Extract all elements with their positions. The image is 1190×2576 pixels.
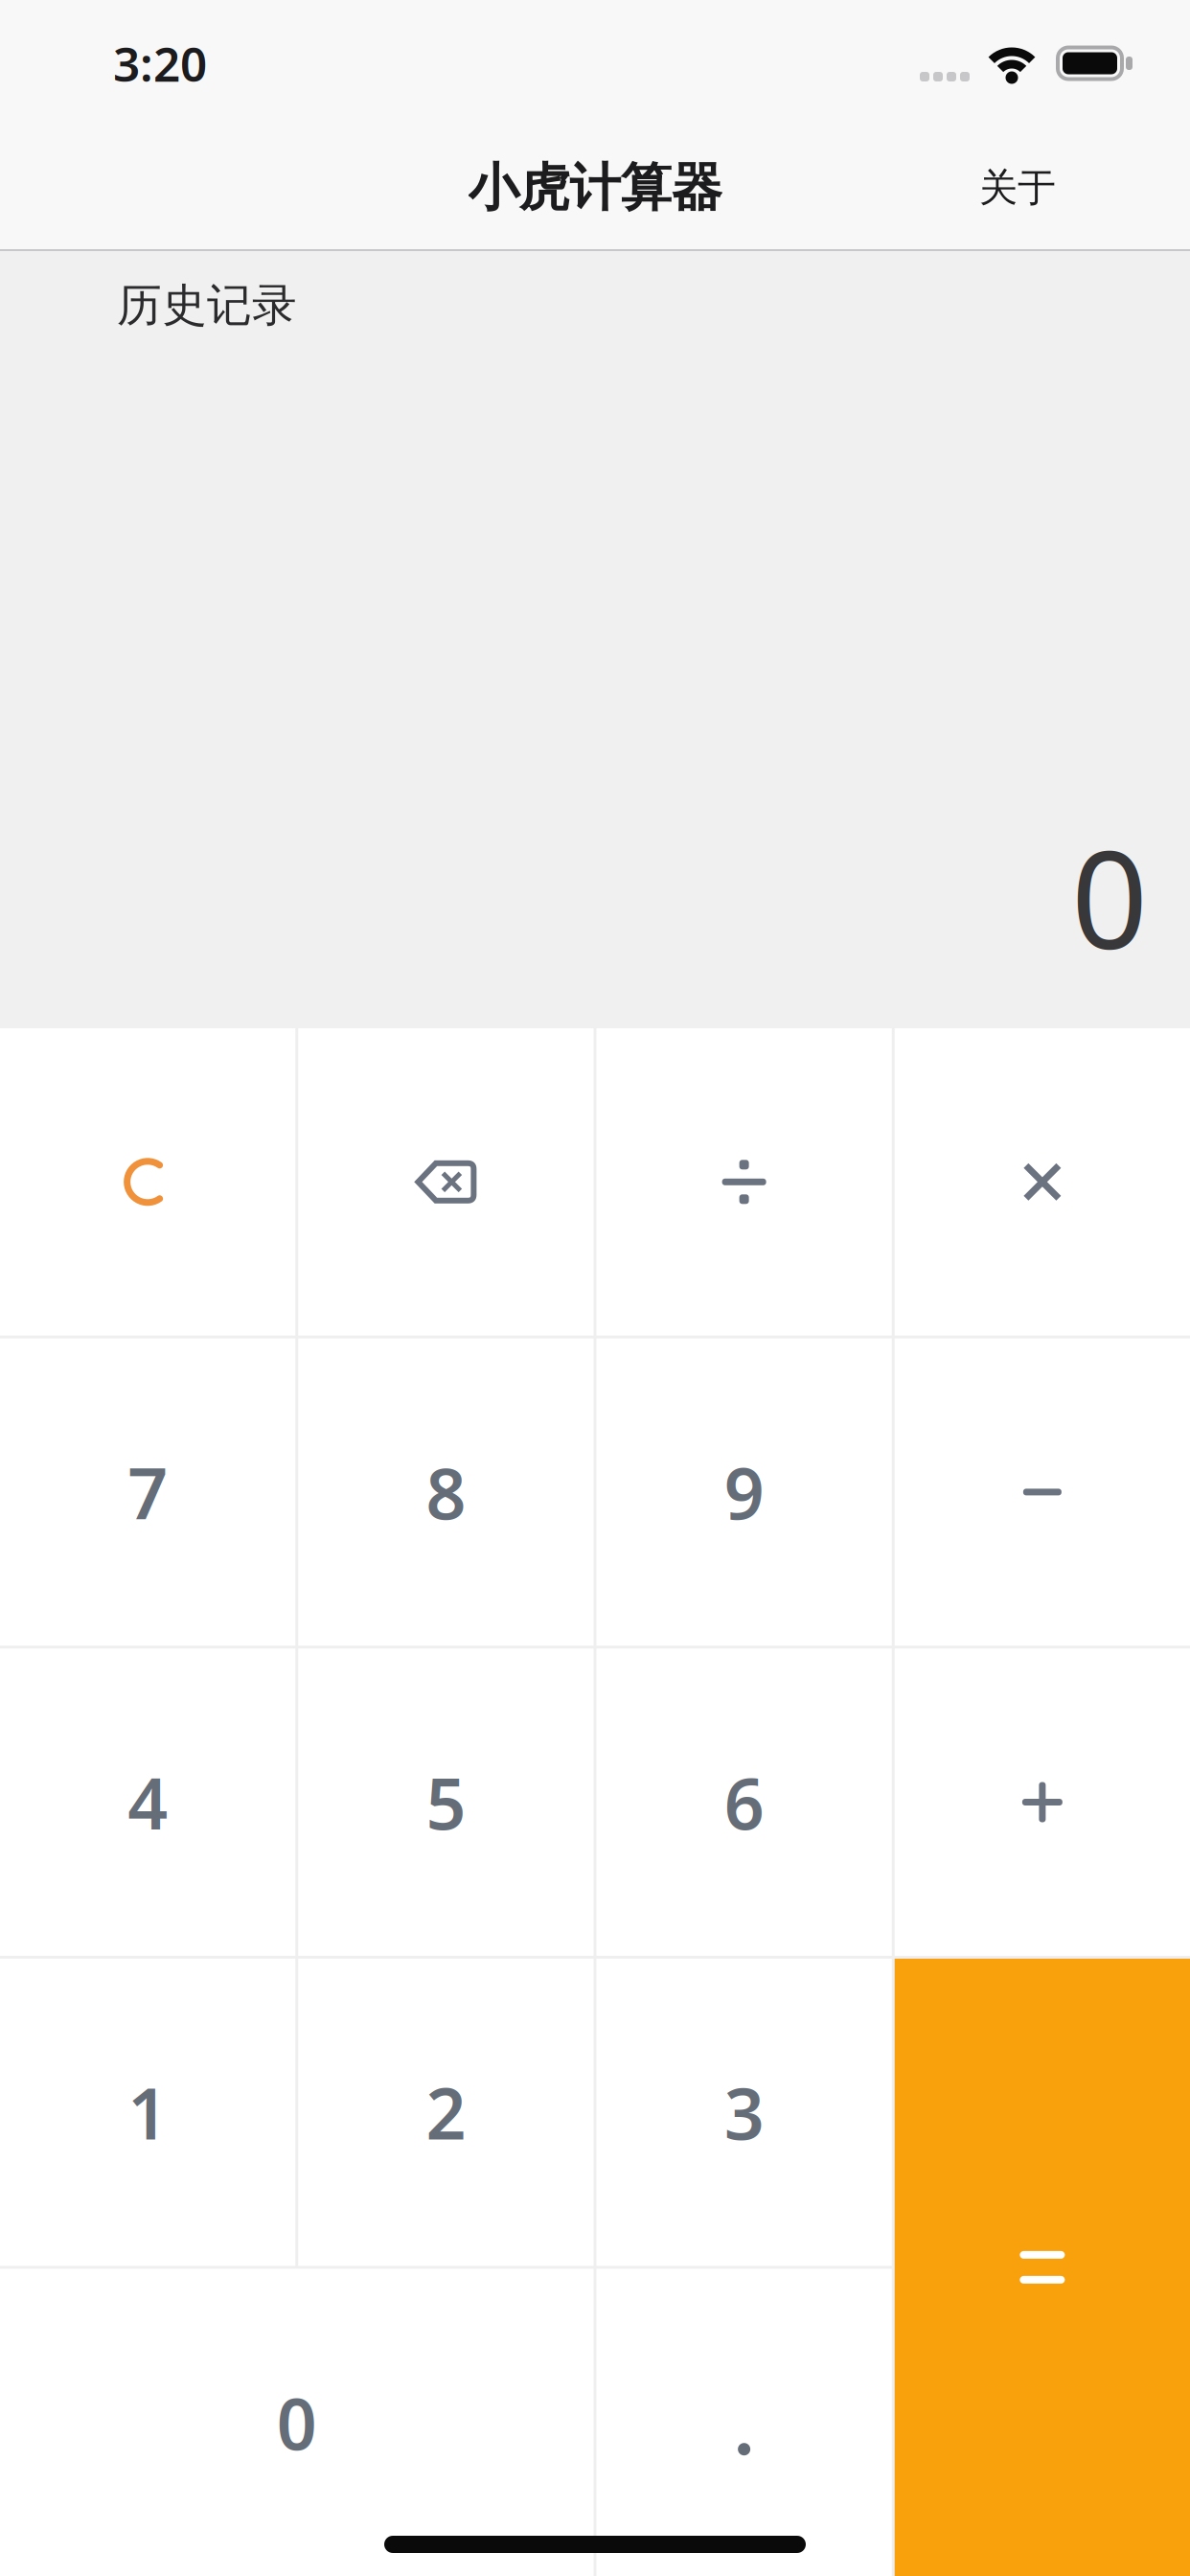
staticText: 历史记录: [117, 278, 297, 333]
button[interactable]: 减: [895, 1338, 1190, 1646]
staticText: 关于: [979, 164, 1056, 211]
button[interactable]: 小数点: [596, 2269, 892, 2576]
staticText: 小虎计算器: [468, 156, 722, 219]
staticText: 1: [128, 2066, 168, 2159]
staticText: 6: [724, 1755, 764, 1849]
staticText: 0: [1071, 808, 1148, 986]
button[interactable]: 8: [298, 1338, 593, 1646]
button[interactable]: 4: [0, 1649, 295, 1956]
button[interactable]: 7: [0, 1338, 295, 1646]
staticText: 3:20: [113, 32, 207, 95]
staticText: 8: [426, 1445, 466, 1539]
button[interactable]: 历史记录: [117, 278, 297, 333]
staticText: 3: [724, 2066, 764, 2159]
button[interactable]: 6: [596, 1649, 892, 1956]
staticText: 0: [277, 2376, 317, 2469]
staticText: 9: [724, 1445, 764, 1539]
button[interactable]: 0: [0, 2269, 594, 2576]
staticText: 2: [426, 2066, 466, 2159]
button[interactable]: 除: [596, 1028, 892, 1336]
staticText: 4: [128, 1755, 168, 1849]
button[interactable]: 9: [596, 1338, 892, 1646]
staticText: 5: [426, 1755, 466, 1849]
button[interactable]: 2: [298, 1959, 593, 2266]
button[interactable]: 关于: [979, 164, 1056, 211]
button[interactable]: 5: [298, 1649, 593, 1956]
button[interactable]: 1: [0, 1959, 295, 2266]
staticText: 7: [128, 1445, 168, 1539]
button[interactable]: 清除: [0, 1028, 295, 1336]
button[interactable]: 乘: [895, 1028, 1190, 1336]
button[interactable]: 退格: [298, 1028, 593, 1336]
button[interactable]: 3: [596, 1959, 892, 2266]
button[interactable]: 加: [895, 1649, 1190, 1956]
button[interactable]: 等于: [895, 1959, 1190, 2576]
